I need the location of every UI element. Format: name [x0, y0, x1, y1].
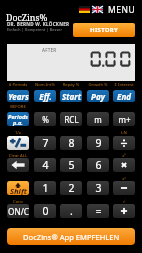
button[interactable]: m — [87, 112, 109, 126]
staticText: Conv — [7, 199, 29, 205]
button[interactable]: 1 — [34, 181, 56, 195]
staticText: Periods p.a. — [8, 113, 28, 126]
button[interactable]: . — [60, 204, 82, 218]
staticText: DocZins% — [6, 12, 66, 25]
button[interactable]: Start — [60, 90, 82, 102]
staticText: 7 — [42, 136, 49, 150]
staticText: 2 — [68, 181, 75, 195]
button[interactable]: MENU — [106, 4, 138, 16]
button[interactable]: 7 — [34, 136, 56, 150]
button[interactable]: Plus minus — [7, 136, 29, 150]
staticText: Start — [62, 91, 81, 102]
button[interactable]: Divide — [113, 136, 135, 150]
button[interactable]: 9 — [87, 136, 109, 150]
button[interactable]: Backspace — [7, 158, 29, 172]
staticText: AFTER — [42, 47, 57, 53]
button[interactable]: Periods p.a. — [7, 112, 29, 126]
staticText: Growth % — [87, 82, 109, 88]
button[interactable]: ON/C — [7, 204, 29, 218]
button[interactable]: RCL — [60, 112, 82, 126]
staticText: 4 — [42, 158, 49, 172]
button[interactable]: Eff. — [34, 90, 56, 102]
staticText: 8 — [68, 136, 75, 150]
staticText: 3 — [95, 181, 102, 195]
button[interactable]: 0 — [34, 204, 56, 218]
staticText: 9 — [95, 136, 102, 150]
staticText: x² — [113, 153, 135, 159]
staticText: ON/C — [8, 206, 29, 217]
button[interactable]: DocZins® App EMPFEHLEN — [7, 228, 135, 245]
staticText: 1/x — [7, 130, 29, 136]
staticText: Shift — [10, 186, 27, 195]
staticText: xʸ — [113, 176, 135, 182]
staticText: DR. BERND W. KLÖCKNER — [7, 21, 79, 28]
button[interactable]: 6 — [87, 158, 109, 172]
button[interactable]: 4 — [34, 158, 56, 172]
staticText: DocZins® App EMPFEHLEN — [23, 232, 120, 242]
button[interactable]: Years — [7, 90, 29, 102]
staticText: # Periods — [7, 82, 29, 88]
staticText: 5 — [68, 158, 75, 172]
staticText: Eff. — [39, 91, 52, 102]
staticText: Nom.Int% — [34, 82, 56, 88]
staticText: MENU — [108, 4, 136, 16]
button[interactable]: German language — [79, 6, 90, 13]
button[interactable]: 2 — [60, 181, 82, 195]
staticText: m — [94, 114, 102, 125]
staticText: LN — [113, 130, 135, 136]
button[interactable]: Plus — [113, 204, 135, 218]
staticText: m+ — [118, 114, 131, 125]
button[interactable]: HISTORY — [73, 23, 135, 37]
staticText: 0 — [42, 204, 49, 218]
staticText: Clear ALL — [7, 153, 29, 159]
staticText: Einfach | Kompetent | Besser — [7, 27, 79, 32]
button[interactable]: Pay — [87, 90, 109, 102]
button[interactable]: Minus — [113, 181, 135, 195]
button[interactable]: = — [87, 204, 109, 218]
button[interactable]: 3 — [87, 181, 109, 195]
button[interactable]: End — [113, 90, 135, 102]
button[interactable]: 5 — [60, 158, 82, 172]
staticText: Σ Interest — [113, 82, 135, 88]
staticText: BEFORE — [7, 104, 29, 110]
staticText: 6 — [95, 158, 102, 172]
button[interactable]: % — [34, 112, 56, 126]
button[interactable]: m+ — [113, 112, 135, 126]
staticText: √ — [113, 199, 135, 205]
staticText: Repay % — [60, 82, 82, 88]
button[interactable]: 8 — [60, 136, 82, 150]
button[interactable]: English language — [92, 6, 103, 13]
staticText: Pay — [91, 91, 105, 102]
staticText: End — [117, 91, 131, 102]
staticText: RCL — [64, 114, 79, 125]
staticText: = — [95, 204, 102, 218]
staticText: HISTORY — [90, 26, 119, 34]
button[interactable]: Multiply — [113, 158, 135, 172]
staticText: % — [42, 114, 49, 125]
staticText: . — [70, 204, 73, 218]
button[interactable]: Shift — [7, 181, 29, 195]
staticText: 1 — [42, 181, 49, 195]
staticText: Years — [8, 91, 29, 102]
